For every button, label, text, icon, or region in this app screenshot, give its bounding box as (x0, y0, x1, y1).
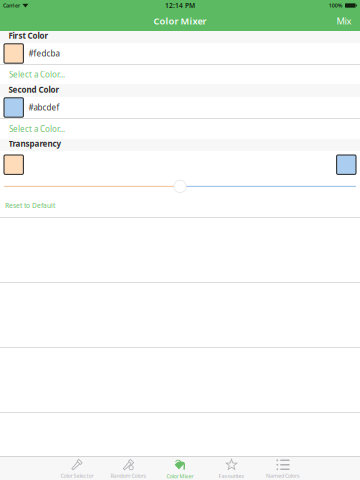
staticText: Color Mixer (166, 473, 193, 480)
staticText: First Color (8, 30, 48, 41)
button[interactable]: Named Colors (257, 457, 309, 480)
staticText: Color Mixer (153, 15, 206, 27)
button[interactable]: Favourites (206, 457, 257, 480)
button[interactable]: Color Selector (51, 457, 103, 480)
staticText: Select a Color... (9, 124, 65, 134)
button[interactable]: Random Colors (103, 457, 154, 480)
staticText: Reset to Default (5, 201, 55, 210)
button[interactable]: #abcdef (0, 97, 360, 118)
staticText: Select a Color... (9, 69, 65, 80)
staticText: Named Colors (266, 472, 300, 479)
staticText: 100% (329, 2, 343, 9)
staticText: Color Selector (60, 472, 93, 479)
button[interactable]: Mix (324, 11, 360, 31)
button[interactable]: Select a Color... (0, 119, 360, 139)
button[interactable]: #fedcba (0, 43, 360, 64)
staticText: 12:14 PM (165, 1, 195, 10)
button[interactable]: Reset to Default (5, 199, 55, 212)
button[interactable]: Select a Color... (0, 65, 360, 84)
staticText: #abcdef (28, 102, 59, 113)
staticText: Transparency (8, 138, 61, 149)
staticText: Mix (336, 15, 351, 27)
staticText: Random Colors (110, 472, 146, 479)
staticText: #fedcba (28, 48, 59, 59)
button[interactable]: Color Mixer (154, 457, 206, 480)
staticText: Second Color (8, 84, 59, 95)
staticText: Favourites (218, 472, 244, 479)
staticText: Carrier (3, 2, 20, 9)
